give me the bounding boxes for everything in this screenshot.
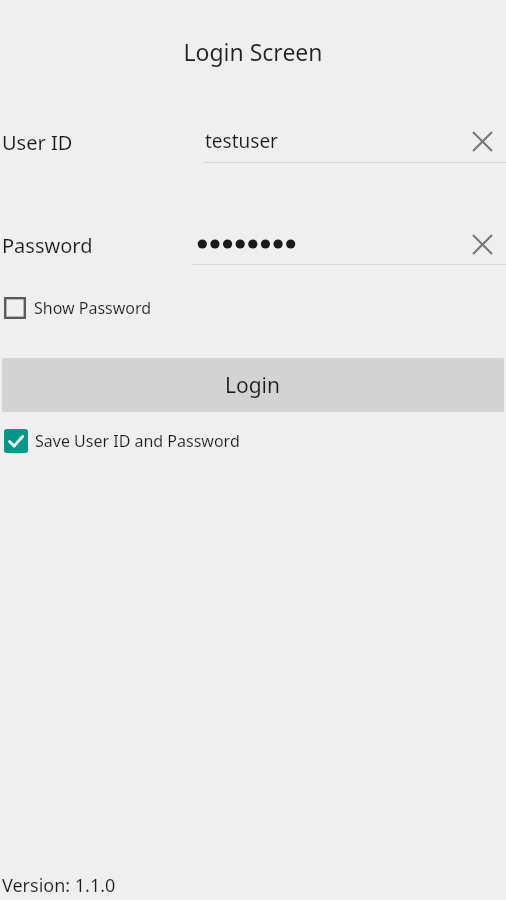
staticText: Login <box>225 371 281 400</box>
staticText: User ID <box>2 129 73 156</box>
staticText: Show Password <box>34 297 152 319</box>
staticText: Version: 1.1.0 <box>2 873 116 898</box>
staticText: Save User ID and Password <box>35 430 240 452</box>
staticText: Login Screen <box>183 36 323 67</box>
button[interactable]: Clear text <box>459 221 505 267</box>
staticText: testuser <box>205 128 278 154</box>
staticText: Password <box>2 232 93 259</box>
button[interactable]: Show Password <box>0 292 152 324</box>
button[interactable]: Save User ID and Password <box>0 426 240 456</box>
button[interactable] <box>192 220 506 272</box>
button[interactable]: testuser <box>203 118 506 170</box>
button[interactable]: Clear text <box>459 118 505 164</box>
button[interactable]: Login <box>2 358 504 412</box>
